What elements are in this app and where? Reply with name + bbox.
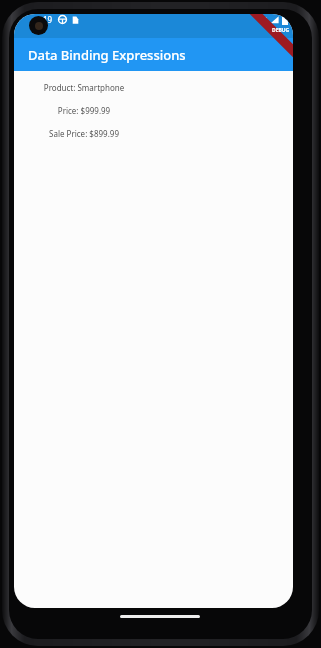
staticText: DEBUG: [272, 27, 290, 34]
button[interactable]: Data Binding Expressions: [14, 38, 293, 71]
staticText: Data Binding Expressions: [28, 46, 186, 64]
staticText: Sale Price: $899.99: [30, 128, 138, 139]
staticText: Product: Smartphone: [30, 82, 138, 93]
staticText: Price: $999.99: [30, 105, 138, 116]
staticText: 19: [43, 14, 53, 25]
other: Debug banner: [247, 14, 293, 60]
